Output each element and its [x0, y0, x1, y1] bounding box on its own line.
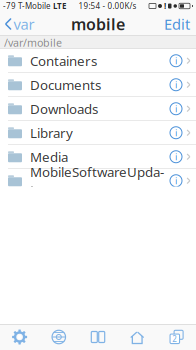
staticText: MobileSoftwareUpdate [30, 163, 164, 198]
staticText: /var/mobile [4, 35, 62, 50]
button[interactable]: Browser [39, 324, 78, 350]
button[interactable]: Media [0, 145, 196, 169]
button[interactable]: Edit [158, 12, 196, 36]
staticText: i [175, 151, 177, 163]
button[interactable]: Bookmarks [78, 324, 118, 350]
staticText: Media [30, 148, 68, 166]
button[interactable]: Settings [0, 324, 39, 350]
button[interactable]: MobileSoftwareUpdate [0, 169, 196, 193]
staticText: var [14, 14, 35, 34]
staticText: mobile [71, 13, 125, 35]
staticText: LTE [51, 1, 66, 11]
staticText: i [175, 175, 177, 187]
button[interactable]: Downloads [0, 97, 196, 121]
button[interactable]: Containers [0, 49, 196, 73]
staticText: -79 T-Mobile [3, 1, 51, 11]
staticText: i [175, 127, 177, 139]
button[interactable]: Library [0, 121, 196, 145]
staticText: i [175, 79, 177, 91]
staticText: i [175, 103, 177, 115]
staticText: Downloads [30, 100, 98, 118]
button[interactable]: Tabs, 2 open [157, 324, 196, 350]
button[interactable]: var [0, 12, 40, 36]
staticText: Edit [164, 14, 190, 34]
button[interactable]: Documents [0, 73, 196, 97]
button[interactable]: Home [118, 324, 157, 350]
staticText: Containers [30, 52, 97, 70]
staticText: 19:54 - 0.00K/s [78, 1, 136, 11]
staticText: i [175, 55, 177, 67]
staticText: Library [30, 124, 73, 142]
staticText: Documents [30, 76, 101, 94]
staticText: ! [164, 1, 166, 11]
staticText: 2 [172, 333, 177, 344]
